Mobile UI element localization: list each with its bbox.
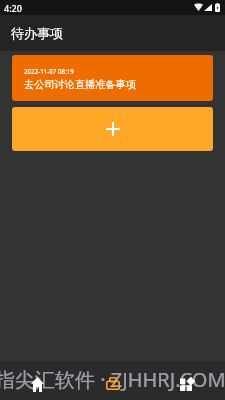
- staticText: 指尖汇软件 · ZJHHRJ.COM: [0, 366, 225, 393]
- button[interactable]: Home: [0, 361, 75, 400]
- staticText: 待办事项: [11, 25, 63, 41]
- button[interactable]: Add task: [12, 107, 213, 151]
- staticText: 4:20: [4, 2, 22, 14]
- button[interactable]: Tasks: [75, 361, 150, 400]
- button[interactable]: Apps: [150, 361, 225, 400]
- staticText: 2022-11-07 08:19: [24, 67, 74, 75]
- staticText: 去公司讨论直播准备事项: [24, 78, 137, 91]
- button[interactable]: 2022-11-07 08:19: [12, 55, 213, 101]
